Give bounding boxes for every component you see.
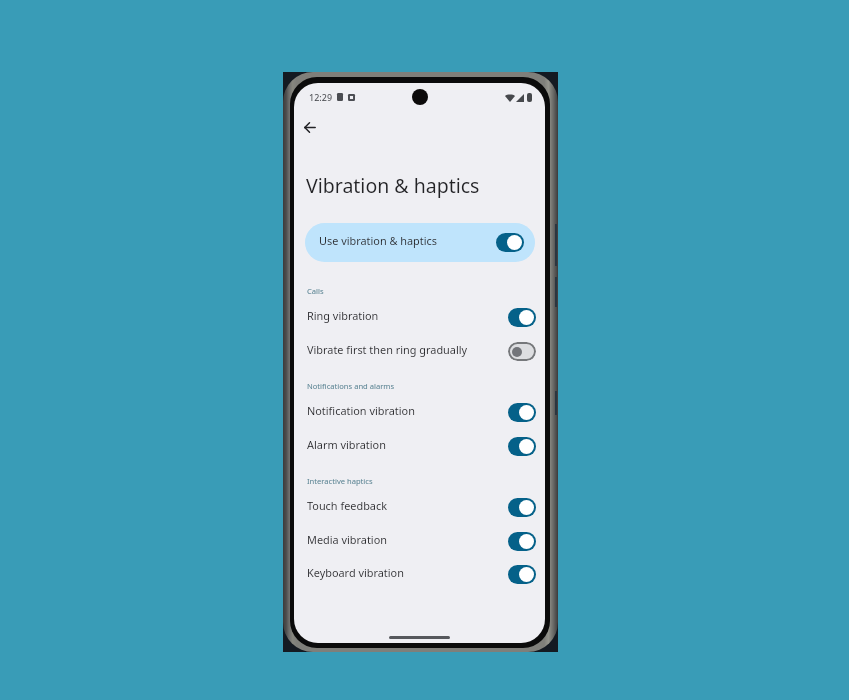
- staticText: Notification vibration: [307, 403, 415, 418]
- staticText: Keyboard vibration: [307, 565, 404, 580]
- button[interactable]: Switch, on: [508, 437, 536, 456]
- button[interactable]: Touch feedback: [294, 493, 545, 521]
- button[interactable]: Alarm vibration: [294, 432, 545, 460]
- staticText: Media vibration: [307, 532, 387, 547]
- staticText: Vibration & haptics: [306, 172, 480, 199]
- staticText: Use vibration & haptics: [319, 233, 438, 248]
- button[interactable]: Back: [294, 112, 325, 143]
- button[interactable]: Switch, on: [508, 403, 536, 422]
- button[interactable]: Switch, off: [508, 342, 536, 361]
- staticText: Alarm vibration: [307, 437, 386, 452]
- button[interactable]: Ring vibration: [294, 303, 545, 331]
- button[interactable]: Switch, on: [508, 565, 536, 584]
- button[interactable]: Use vibration & haptics, on: [305, 223, 535, 262]
- staticText: Vibrate first then ring gradually: [307, 342, 468, 357]
- staticText: Calls: [307, 286, 324, 296]
- button[interactable]: Switch, on: [508, 308, 536, 327]
- button[interactable]: Switch, on: [508, 532, 536, 551]
- staticText: Touch feedback: [307, 498, 387, 513]
- staticText: Notifications and alarms: [307, 381, 395, 391]
- button[interactable]: Vibrate first then ring gradually: [294, 337, 545, 365]
- button[interactable]: Switch, on: [508, 498, 536, 517]
- button[interactable]: Media vibration: [294, 527, 545, 555]
- staticText: 12:29: [309, 91, 333, 103]
- button[interactable]: Keyboard vibration: [294, 560, 545, 588]
- staticText: Interactive haptics: [307, 476, 373, 486]
- button[interactable]: Notification vibration: [294, 398, 545, 426]
- button[interactable]: Switch, on: [496, 233, 524, 252]
- staticText: Ring vibration: [307, 308, 379, 323]
